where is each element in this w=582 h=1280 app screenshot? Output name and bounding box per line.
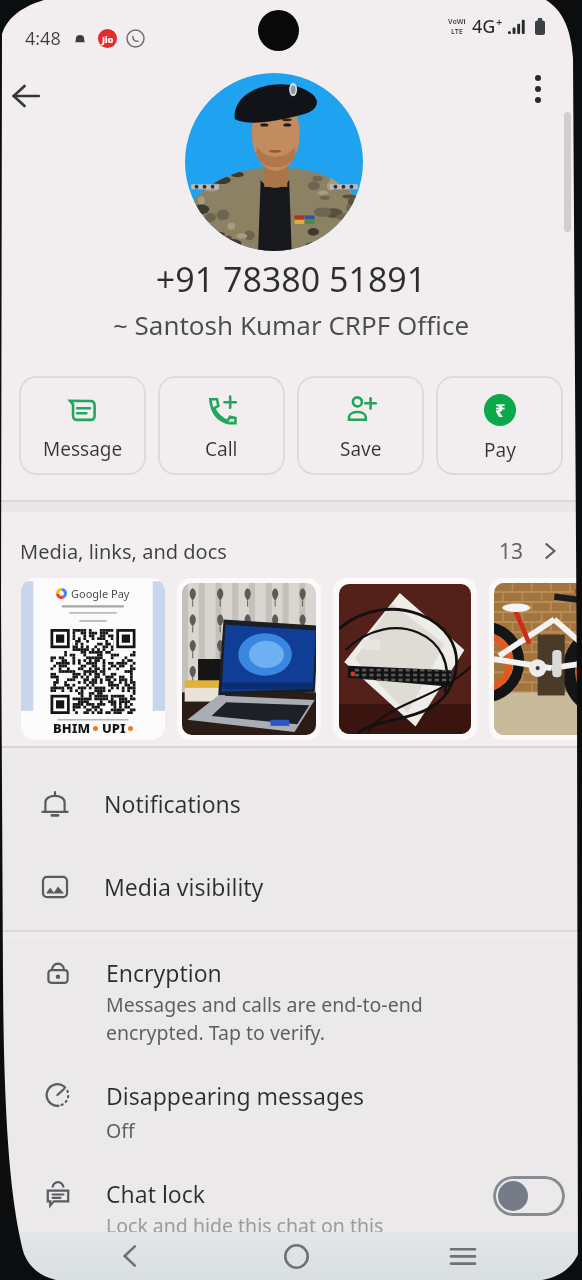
button[interactable]: [177, 578, 321, 740]
staticText: ₹: [495, 398, 506, 423]
staticText: Jio: [102, 33, 114, 45]
staticText: +: [496, 14, 503, 29]
button[interactable]: Media visibility: [0, 845, 582, 928]
staticText: LTE: [451, 27, 463, 37]
staticText: Message: [43, 436, 123, 462]
button[interactable]: Message: [19, 376, 146, 475]
staticText: Disappearing messages: [106, 1080, 365, 1111]
staticText: Google Pay: [71, 586, 130, 601]
button[interactable]: Encryption: [0, 940, 582, 1063]
staticText: Media visibility: [104, 871, 264, 902]
staticText: ~ Santosh Kumar CRPF Office: [0, 307, 582, 342]
staticText: Notifications: [104, 788, 241, 819]
staticText: BHIM: [53, 719, 91, 737]
button[interactable]: Notifications: [0, 762, 582, 845]
button[interactable]: Google Pay: [21, 578, 165, 740]
staticText: Pay: [484, 437, 516, 463]
staticText: Chat lock: [106, 1178, 206, 1209]
button[interactable]: Media, links, and docs: [0, 524, 582, 578]
button[interactable]: [489, 578, 582, 740]
staticText: Save: [340, 436, 382, 462]
button[interactable]: Disappearing messages: [0, 1063, 582, 1161]
staticText: Encryption: [106, 957, 222, 988]
button[interactable]: Chat lock: [0, 1161, 582, 1256]
staticText: +91 78380 51891: [0, 256, 582, 302]
staticText: Media, links, and docs: [20, 538, 227, 565]
button[interactable]: Chat lock toggle: [493, 1176, 565, 1216]
staticText: Off: [106, 1117, 135, 1144]
staticText: VoWi: [448, 17, 466, 27]
button[interactable]: Call: [158, 376, 285, 475]
staticText: 4G: [472, 14, 496, 39]
staticText: 4:48: [25, 26, 61, 51]
staticText: Lock and hide this chat on this: [106, 1212, 384, 1239]
button[interactable]: Back: [0, 70, 52, 122]
staticText: 13: [499, 537, 524, 566]
staticText: UPI: [102, 719, 126, 737]
staticText: Call: [205, 436, 238, 462]
button[interactable]: Recent apps: [429, 1232, 497, 1280]
staticText: Messages and calls are end-to-end encryp…: [106, 991, 423, 1046]
button[interactable]: Save: [297, 376, 424, 475]
button[interactable]: Home: [262, 1232, 330, 1280]
button[interactable]: [333, 578, 477, 740]
button[interactable]: Back: [96, 1232, 164, 1280]
button[interactable]: ₹: [436, 376, 563, 475]
button[interactable]: More options: [514, 65, 562, 113]
